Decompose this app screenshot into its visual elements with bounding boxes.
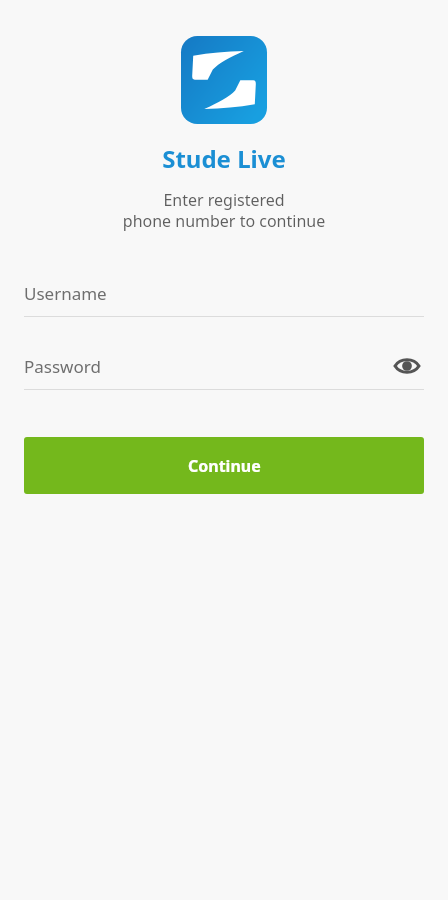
staticText: Username [24,282,424,305]
button[interactable]: Continue [24,437,424,494]
staticText: Password [24,355,390,378]
staticText: Stude Live [162,142,286,175]
button[interactable]: Show password [390,349,424,383]
button[interactable]: Password [24,343,424,389]
staticText: Enter registered phone number to continu… [0,189,448,232]
staticText: Continue [188,455,261,477]
button[interactable]: Username [24,270,424,316]
